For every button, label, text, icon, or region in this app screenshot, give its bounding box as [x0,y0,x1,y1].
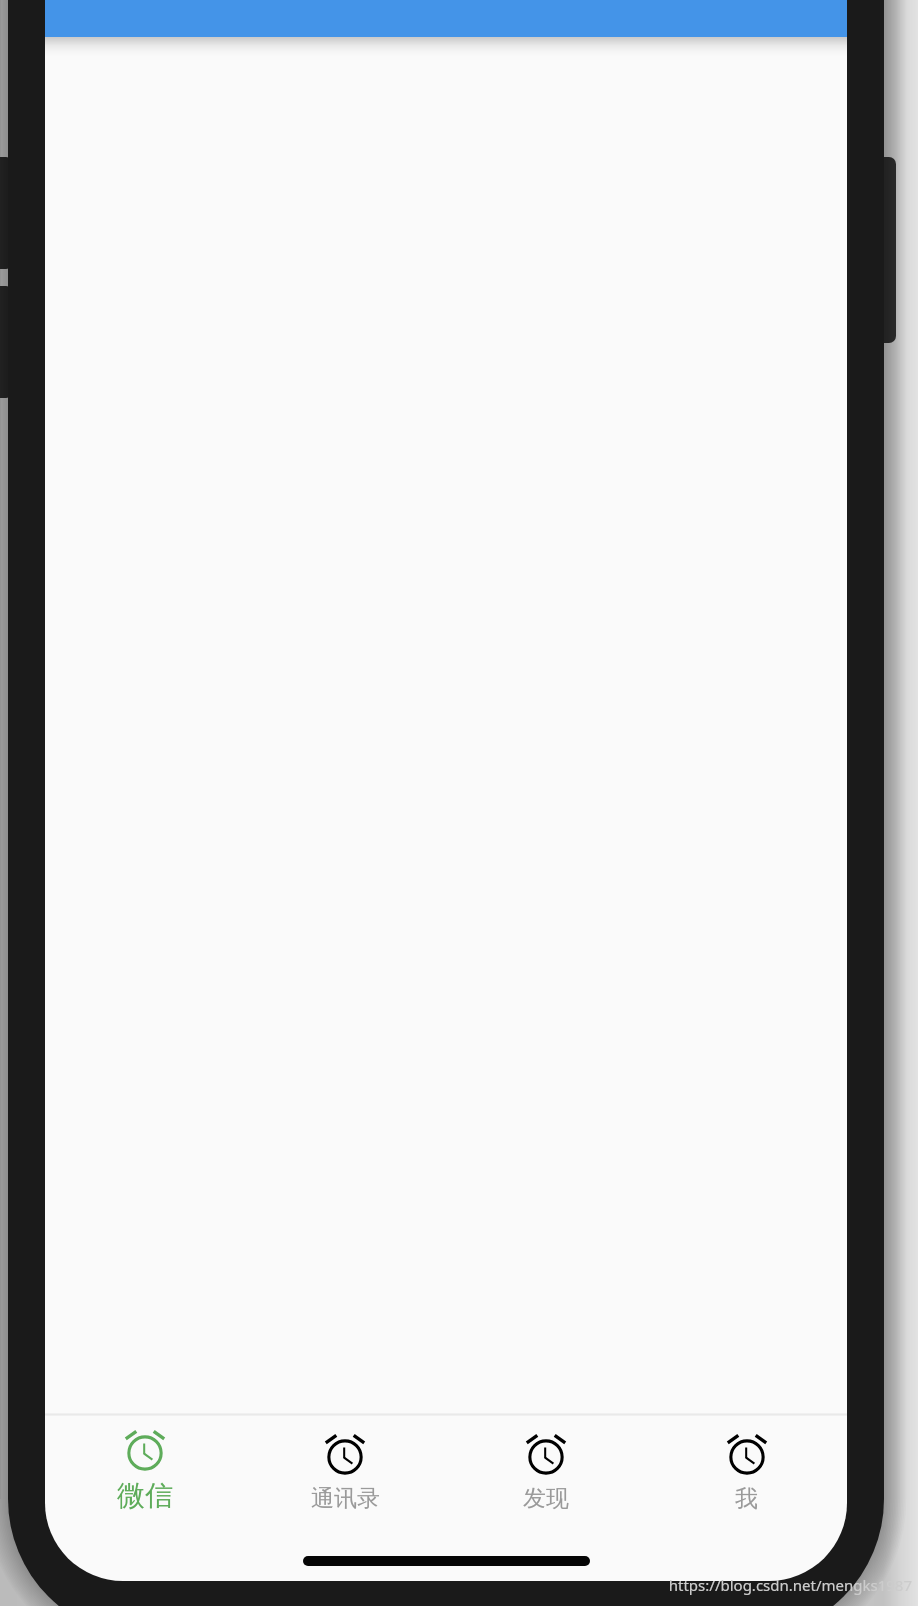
button[interactable]: 发现 [445,1416,646,1527]
button[interactable]: 我 [646,1416,847,1527]
staticText: https://blog.csdn.net/mengks1987 [512,1575,912,1595]
staticText: 发现 [523,1484,569,1513]
button[interactable]: 通讯录 [245,1416,445,1527]
staticText: 通讯录 [311,1484,380,1513]
button[interactable]: 微信 [45,1416,245,1527]
staticText: 我 [735,1484,758,1513]
staticText: 微信 [117,1478,173,1513]
